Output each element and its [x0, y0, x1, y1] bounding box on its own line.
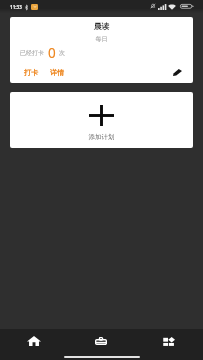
staticText: 详情	[50, 68, 64, 77]
staticText: 晨读	[10, 21, 193, 31]
button[interactable]: Edit	[167, 62, 187, 82]
staticText: 每日	[10, 35, 193, 43]
button[interactable]: 打卡	[21, 66, 41, 79]
staticText: 次	[59, 49, 65, 57]
button[interactable]: 晨读	[10, 17, 193, 83]
staticText: 已经打卡	[20, 49, 44, 57]
staticText: 0	[48, 44, 56, 62]
button[interactable]: Plans	[67, 329, 135, 351]
staticText: 添加计划	[10, 133, 193, 141]
staticText: 11:33	[10, 4, 22, 10]
button[interactable]: 详情	[47, 66, 67, 79]
staticText: 打卡	[24, 68, 38, 77]
button[interactable]: Home	[0, 329, 67, 351]
button[interactable]: 添加计划	[10, 92, 193, 148]
button[interactable]: Dashboard	[135, 329, 203, 351]
